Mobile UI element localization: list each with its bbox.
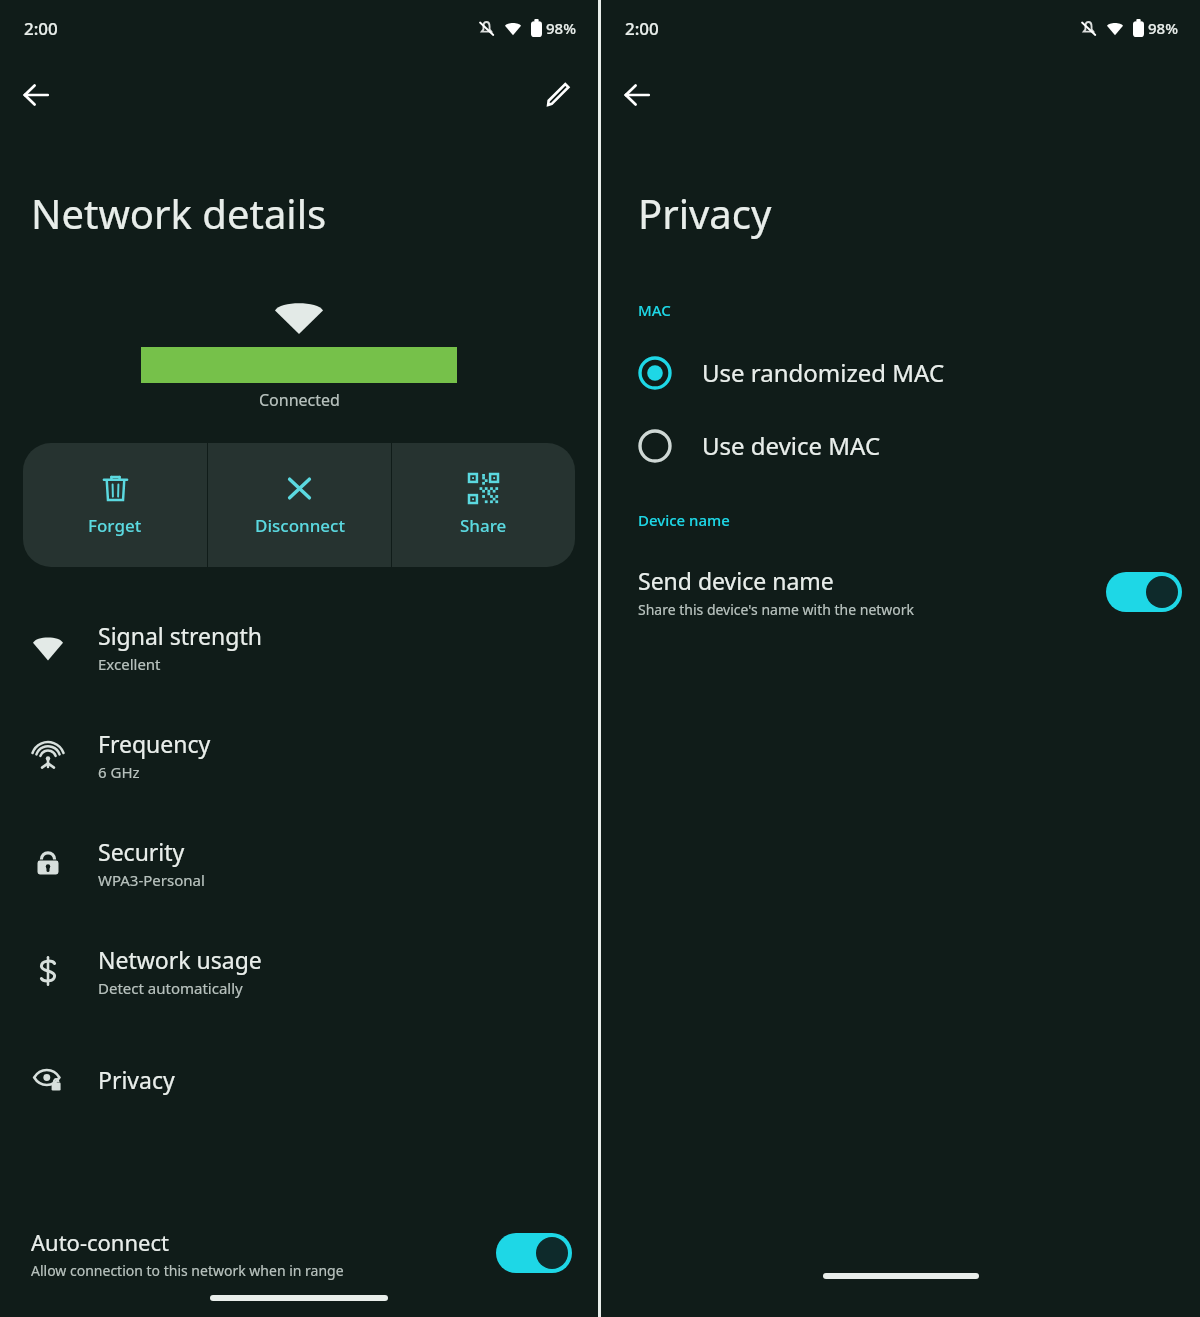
staticText: Security bbox=[98, 836, 185, 867]
staticText: Send device name bbox=[638, 565, 834, 596]
button[interactable]: Share bbox=[392, 443, 575, 567]
staticText: 2:00 bbox=[24, 17, 58, 40]
button[interactable]: Signal strength bbox=[0, 593, 598, 701]
staticText: Network details bbox=[31, 186, 327, 240]
button[interactable]: Back bbox=[611, 69, 663, 121]
staticText: Auto-connect bbox=[31, 1227, 169, 1257]
staticText: 6 GHz bbox=[98, 762, 140, 782]
staticText: Share this device's name with the networ… bbox=[638, 600, 915, 619]
button[interactable]: Edit bbox=[532, 69, 584, 121]
button[interactable]: Toggle bbox=[1106, 572, 1182, 612]
staticText: 2:00 bbox=[625, 17, 659, 40]
staticText: Privacy bbox=[638, 186, 772, 240]
staticText: Connected bbox=[259, 389, 340, 411]
staticText: Signal strength bbox=[98, 620, 262, 651]
button[interactable]: Use device MAC bbox=[601, 409, 1200, 482]
staticText: Device name bbox=[638, 510, 730, 530]
staticText: Use device MAC bbox=[702, 429, 881, 462]
staticText: Network usage bbox=[98, 944, 262, 975]
staticText: MAC bbox=[638, 300, 671, 320]
button[interactable]: Toggle bbox=[496, 1233, 572, 1273]
button[interactable]: Disconnect bbox=[208, 443, 391, 567]
button[interactable]: Security bbox=[0, 809, 598, 917]
button[interactable]: Privacy bbox=[0, 1025, 598, 1133]
button[interactable]: Send device name bbox=[601, 554, 1200, 630]
staticText: Use randomized MAC bbox=[702, 356, 945, 389]
staticText: Privacy bbox=[98, 1064, 175, 1095]
staticText: Frequency bbox=[98, 728, 211, 759]
button[interactable]: Forget bbox=[23, 443, 207, 567]
staticText: Disconnect bbox=[255, 514, 345, 537]
staticText: Share bbox=[460, 514, 507, 537]
staticText: 98% bbox=[546, 18, 576, 38]
staticText: Forget bbox=[88, 514, 142, 537]
staticText: WPA3-Personal bbox=[98, 870, 205, 890]
button[interactable]: Frequency bbox=[0, 701, 598, 809]
button[interactable]: Use randomized MAC bbox=[601, 336, 1200, 409]
button[interactable]: Back bbox=[10, 69, 62, 121]
button[interactable]: Network usage bbox=[0, 917, 598, 1025]
staticText: 98% bbox=[1148, 18, 1178, 38]
staticText: Excellent bbox=[98, 654, 161, 674]
staticText: Detect automatically bbox=[98, 978, 243, 998]
staticText: Allow connection to this network when in… bbox=[31, 1261, 344, 1280]
button[interactable]: Auto-connect bbox=[0, 1211, 598, 1295]
